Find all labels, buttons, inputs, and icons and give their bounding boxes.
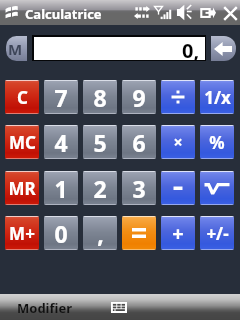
button[interactable]: 0 xyxy=(44,216,78,250)
button[interactable]: 1/x xyxy=(200,80,234,114)
button[interactable]: Divide xyxy=(161,80,195,114)
button[interactable]: +/- xyxy=(200,216,234,250)
staticText: 7 xyxy=(54,82,68,113)
staticText: Modifier xyxy=(17,299,72,317)
button[interactable]: 5 xyxy=(83,125,117,159)
staticText: 2 xyxy=(93,173,107,204)
staticText: × xyxy=(173,131,183,153)
button[interactable]: 8 xyxy=(83,80,117,114)
staticText: MR xyxy=(8,177,36,200)
button[interactable]: 9 xyxy=(122,80,156,114)
button[interactable]: Volume xyxy=(176,4,192,21)
staticText: 1 xyxy=(54,173,68,204)
staticText: MC xyxy=(9,131,36,154)
button[interactable]: 6 xyxy=(122,125,156,159)
button[interactable]: × xyxy=(161,125,195,159)
button[interactable]: M xyxy=(6,36,27,61)
staticText: M xyxy=(8,39,23,59)
staticText: 0, xyxy=(182,37,200,60)
staticText: 3 xyxy=(132,173,146,204)
staticText: + xyxy=(172,220,184,247)
button[interactable]: Square root xyxy=(200,171,234,205)
button[interactable]: Minus xyxy=(161,171,195,205)
button[interactable]: 2 xyxy=(83,171,117,205)
staticText: , xyxy=(97,218,104,249)
staticText: 9 xyxy=(132,82,146,113)
staticText: +/- xyxy=(206,222,229,245)
button[interactable]: Signal strength xyxy=(153,5,172,20)
button[interactable]: Modifier xyxy=(6,294,82,320)
staticText: 5 xyxy=(93,127,107,158)
staticText: % xyxy=(209,131,225,154)
staticText: M+ xyxy=(9,222,35,245)
button[interactable]: Sync xyxy=(201,6,216,20)
staticText: 1/x xyxy=(204,86,231,109)
staticText: Calculatrice xyxy=(25,5,102,23)
button[interactable]: Keyboard xyxy=(99,294,139,320)
staticText: 0 xyxy=(54,218,68,249)
button[interactable]: Backspace xyxy=(211,36,236,61)
button[interactable]: + xyxy=(161,216,195,250)
button[interactable]: Equals xyxy=(122,216,156,250)
staticText: C xyxy=(17,86,28,109)
button[interactable]: Connectivity xyxy=(134,5,151,20)
staticText: 6 xyxy=(132,127,146,158)
button[interactable]: Close xyxy=(223,6,238,21)
button[interactable]: % xyxy=(200,125,234,159)
button[interactable]: 3 xyxy=(122,171,156,205)
button[interactable]: M+ xyxy=(5,216,39,250)
staticText: 8 xyxy=(93,82,107,113)
button[interactable]: 4 xyxy=(44,125,78,159)
button[interactable]: MR xyxy=(5,171,39,205)
button[interactable]: 7 xyxy=(44,80,78,114)
button[interactable]: C xyxy=(5,80,39,114)
button[interactable]: MC xyxy=(5,125,39,159)
button[interactable]: , xyxy=(83,216,117,250)
staticText: 4 xyxy=(54,127,68,158)
button[interactable]: 1 xyxy=(44,171,78,205)
